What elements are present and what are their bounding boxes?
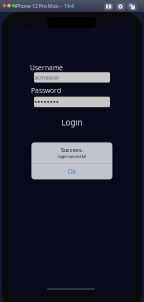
staticText: Ok	[67, 167, 76, 176]
button[interactable]: Home	[116, 2, 125, 10]
button[interactable]: Share	[127, 2, 137, 10]
button[interactable]: Login	[34, 116, 110, 128]
staticText: Username	[30, 63, 63, 72]
staticText: Login successful!	[57, 153, 86, 159]
button[interactable]: Screenshot	[104, 2, 113, 10]
staticText: Login	[61, 117, 82, 128]
staticText: Password	[31, 86, 61, 95]
staticText: Success.	[61, 146, 83, 153]
button[interactable]: Ok	[31, 164, 112, 179]
staticText: iPhone 12 Pro Max – 14.4	[15, 2, 74, 10]
staticText: acmeuser	[34, 74, 59, 81]
